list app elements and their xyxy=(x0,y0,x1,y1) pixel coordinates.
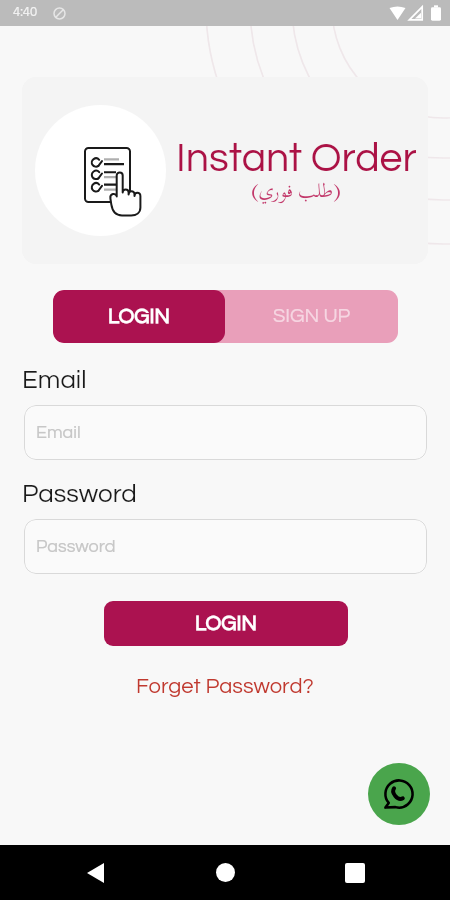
button[interactable]: Password xyxy=(24,519,427,574)
button[interactable]: Forget Password? xyxy=(136,675,314,698)
button[interactable]: LOGIN xyxy=(53,290,225,343)
button[interactable]: Back xyxy=(60,845,130,900)
button[interactable]: LOGIN xyxy=(104,601,348,646)
staticText: Email xyxy=(22,367,87,394)
staticText: (طلب فوري) xyxy=(251,171,341,210)
button[interactable]: Email xyxy=(24,405,427,460)
staticText: Password xyxy=(36,537,116,556)
button[interactable]: WhatsApp xyxy=(368,763,430,825)
staticText: SIGN UP xyxy=(273,306,351,327)
staticText: 4:40 xyxy=(13,5,38,18)
staticText: Password xyxy=(22,481,137,508)
button[interactable]: Home xyxy=(190,845,260,900)
button[interactable]: Recent apps xyxy=(320,845,390,900)
staticText: LOGIN xyxy=(195,613,257,635)
staticText: Email xyxy=(36,423,81,442)
staticText: LOGIN xyxy=(108,306,170,328)
button[interactable]: SIGN UP xyxy=(225,290,398,343)
staticText: Instant Order xyxy=(176,137,417,179)
